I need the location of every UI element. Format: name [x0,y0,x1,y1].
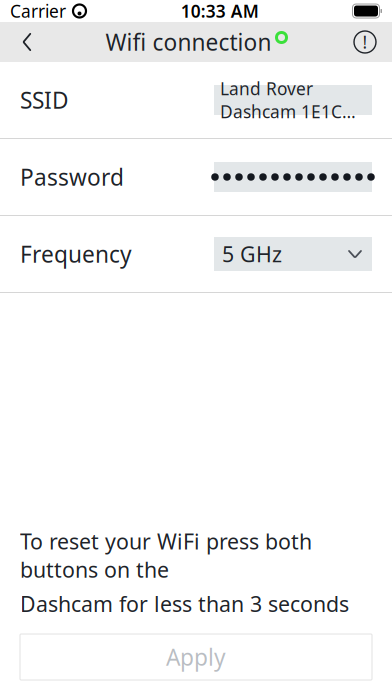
staticText: Dashcam for less than 3 seconds [20,590,349,618]
button[interactable]: Information [338,22,392,62]
staticText: 10:33 AM [181,0,259,22]
button[interactable]: Back [0,22,54,62]
staticText: Apply [166,642,226,672]
staticText: Frequency [20,239,132,269]
staticText: SSID [20,85,69,115]
button[interactable]: Apply [20,634,372,680]
button[interactable]: 5 GHz [214,237,372,271]
staticText: Land Rover Dashcam 1E1C… [220,77,356,123]
staticText: Wifi connection [105,27,271,57]
staticText: Carrier [10,0,66,22]
staticText: To reset your WiFi press both buttons on… [20,527,312,584]
staticText: 5 GHz [222,240,282,268]
staticText: ! [362,30,367,53]
staticText: Password [20,162,124,192]
